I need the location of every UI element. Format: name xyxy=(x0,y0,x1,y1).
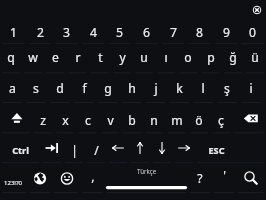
staticText: v xyxy=(107,112,114,129)
staticText: ç xyxy=(218,112,224,129)
button[interactable]: l xyxy=(191,73,215,102)
staticText: 9 xyxy=(223,24,230,41)
button[interactable]: Emoji xyxy=(54,163,80,193)
staticText: ü xyxy=(251,49,259,66)
button[interactable]: m xyxy=(166,103,188,133)
button[interactable]: Search xyxy=(236,163,266,193)
staticText: b xyxy=(128,112,136,129)
staticText: , xyxy=(91,168,95,185)
button[interactable]: o xyxy=(177,44,199,73)
staticText: | xyxy=(71,142,78,159)
staticText: d xyxy=(56,80,64,97)
button[interactable]: s xyxy=(24,73,48,102)
staticText: 6 xyxy=(143,24,150,41)
button[interactable]: ü xyxy=(244,44,266,73)
button[interactable]: a xyxy=(0,73,24,102)
button[interactable]: Shift xyxy=(0,103,32,133)
button[interactable]: | xyxy=(63,133,85,163)
staticText: x xyxy=(62,112,69,129)
button[interactable]: z xyxy=(32,103,54,133)
button[interactable]: p xyxy=(200,44,222,73)
staticText: f xyxy=(82,80,87,97)
button[interactable]: ' xyxy=(212,163,236,193)
button[interactable]: 4 xyxy=(80,16,107,44)
button[interactable]: g xyxy=(96,73,120,102)
staticText: i xyxy=(249,80,253,97)
staticText: g xyxy=(104,80,112,97)
staticText: 1 xyxy=(10,24,17,41)
button[interactable]: 8 xyxy=(186,16,213,44)
button[interactable]: 123!?0 xyxy=(0,163,26,193)
button[interactable]: u xyxy=(133,44,155,73)
button[interactable]: w xyxy=(22,44,44,73)
button[interactable]: r xyxy=(67,44,89,73)
staticText: 123!?0 xyxy=(4,179,22,187)
button[interactable]: j xyxy=(144,73,168,102)
button[interactable]: ESC xyxy=(195,133,237,163)
button[interactable]: 1 xyxy=(0,16,27,44)
button[interactable]: 7 xyxy=(160,16,187,44)
button[interactable]: d xyxy=(48,73,72,102)
staticText: r xyxy=(75,49,81,66)
staticText: j xyxy=(154,80,158,97)
staticText: Türkçe xyxy=(137,167,157,175)
button[interactable]: k xyxy=(167,73,191,102)
staticText: s xyxy=(33,80,39,97)
staticText: 8 xyxy=(196,24,203,41)
staticText: ğ xyxy=(229,49,237,66)
button[interactable]: x xyxy=(54,103,76,133)
button[interactable]: Down arrow xyxy=(151,133,173,163)
button[interactable]: Türkçe xyxy=(105,163,188,193)
staticText: m xyxy=(171,112,183,129)
button[interactable]: Right arrow xyxy=(173,133,195,163)
button[interactable]: 5 xyxy=(106,16,133,44)
button[interactable]: ç xyxy=(210,103,232,133)
staticText: 7 xyxy=(170,24,177,41)
button[interactable]: Left arrow xyxy=(107,133,129,163)
staticText: ' xyxy=(223,167,226,184)
staticText: u xyxy=(140,49,148,66)
button[interactable]: 3 xyxy=(53,16,80,44)
button[interactable]: f xyxy=(72,73,96,102)
button[interactable]: ö xyxy=(188,103,210,133)
button[interactable]: q xyxy=(0,44,22,73)
button[interactable]: Close keyboard xyxy=(247,0,266,20)
staticText: ı xyxy=(164,49,168,66)
button[interactable]: Ctrl xyxy=(0,133,41,163)
button[interactable]: 6 xyxy=(133,16,160,44)
staticText: Ctrl xyxy=(12,144,29,157)
button[interactable]: v xyxy=(99,103,121,133)
staticText: ESC xyxy=(208,144,225,157)
button[interactable]: c xyxy=(77,103,99,133)
staticText: q xyxy=(7,49,15,66)
button[interactable]: e xyxy=(44,44,66,73)
button[interactable]: n xyxy=(143,103,165,133)
button[interactable]: Tab xyxy=(41,133,63,163)
button[interactable]: 0 xyxy=(239,16,266,44)
staticText: ? xyxy=(197,170,203,187)
staticText: h xyxy=(128,80,136,97)
button[interactable]: Up arrow xyxy=(129,133,151,163)
button[interactable]: y xyxy=(111,44,133,73)
button[interactable]: ğ xyxy=(222,44,244,73)
button[interactable]: ş xyxy=(215,73,239,102)
staticText: 4 xyxy=(90,24,97,41)
staticText: ş xyxy=(224,80,230,97)
button[interactable]: Change keyboard language xyxy=(26,163,54,193)
staticText: y xyxy=(119,49,126,66)
button[interactable]: , xyxy=(80,163,105,193)
button[interactable]: b xyxy=(121,103,143,133)
button[interactable]: ? xyxy=(188,163,212,193)
staticText: 0 xyxy=(249,24,256,41)
button[interactable]: 9 xyxy=(213,16,240,44)
button[interactable]: 2 xyxy=(27,16,54,44)
button[interactable]: i xyxy=(239,73,263,102)
button[interactable]: ı xyxy=(155,44,177,73)
button[interactable]: t xyxy=(89,44,111,73)
staticText: p xyxy=(207,49,215,66)
staticText: z xyxy=(40,112,46,129)
button[interactable]: Backspace xyxy=(233,103,266,133)
button[interactable]: h xyxy=(120,73,144,102)
staticText: ö xyxy=(195,112,203,129)
button[interactable]: / xyxy=(85,133,107,163)
